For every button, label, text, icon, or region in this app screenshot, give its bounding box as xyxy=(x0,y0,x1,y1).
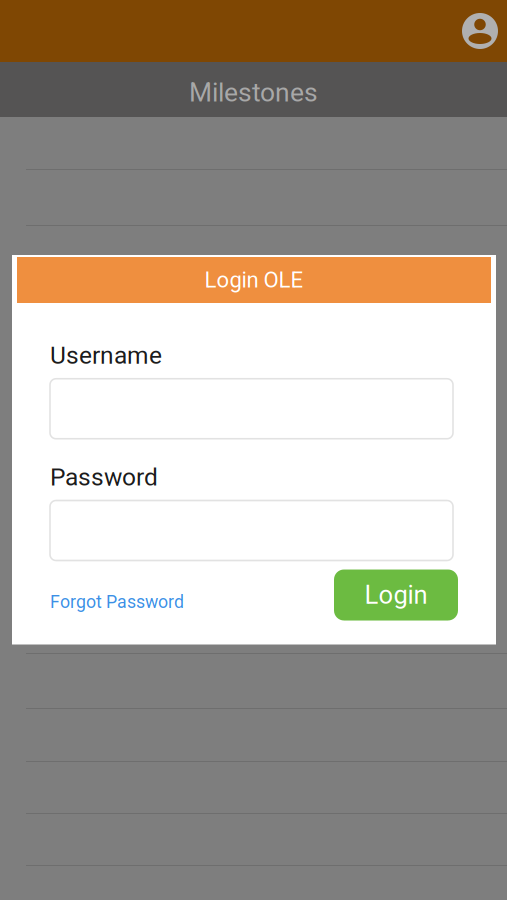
button[interactable]: Account xyxy=(462,13,507,49)
staticText: Password xyxy=(50,463,158,492)
button[interactable]: Forgot Password xyxy=(50,569,184,619)
staticText: Milestones xyxy=(189,77,318,108)
button[interactable]: Login xyxy=(334,569,458,620)
staticText: Username xyxy=(50,341,162,370)
staticText: Login OLE xyxy=(204,267,303,293)
staticText: Forgot Password xyxy=(50,591,184,612)
staticText: Login xyxy=(364,580,427,610)
